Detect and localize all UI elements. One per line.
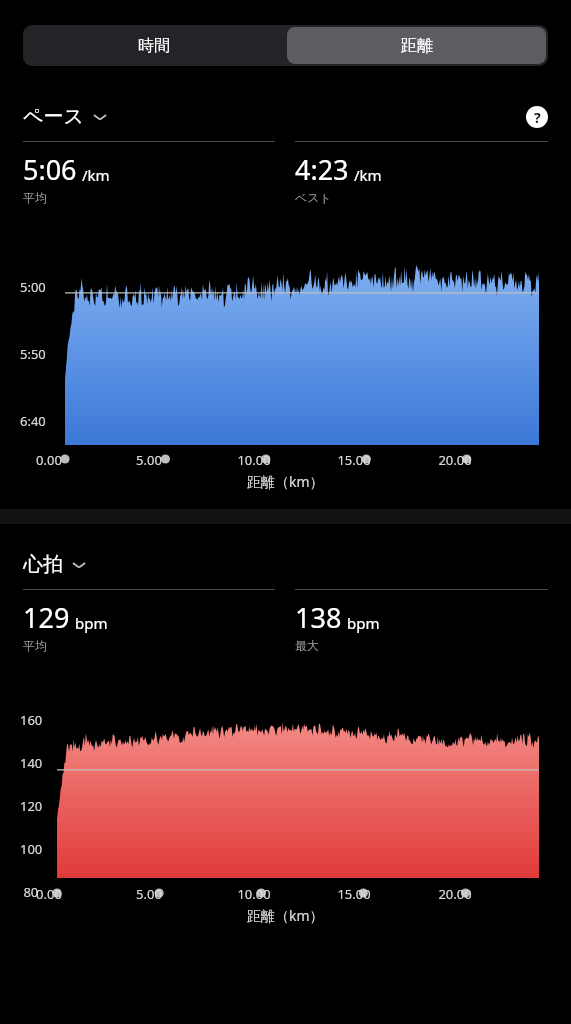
staticText: 5:06: [23, 151, 77, 188]
staticText: 距離（km）: [247, 472, 324, 491]
button[interactable]: Help: [526, 106, 548, 128]
staticText: 6:40: [20, 412, 46, 430]
staticText: 5:00: [20, 278, 46, 296]
staticText: /km: [82, 165, 110, 185]
staticText: 15.00: [337, 885, 371, 903]
staticText: /km: [354, 165, 382, 185]
staticText: 最大: [295, 638, 319, 653]
staticText: 20.00: [438, 885, 472, 903]
staticText: 10.00: [237, 885, 271, 903]
staticText: 心拍: [23, 552, 63, 577]
staticText: 距離: [401, 36, 433, 56]
staticText: 5:50: [20, 345, 46, 363]
staticText: ベスト: [295, 190, 332, 205]
staticText: bpm: [75, 613, 108, 633]
staticText: 0.00: [36, 451, 62, 469]
staticText: 平均: [23, 638, 47, 653]
staticText: 80: [20, 883, 39, 901]
staticText: 5.00: [136, 885, 162, 903]
button[interactable]: 距離: [287, 27, 546, 64]
staticText: ?: [534, 108, 541, 127]
staticText: 120: [20, 797, 43, 815]
staticText: 138: [295, 599, 342, 636]
staticText: 129: [23, 599, 70, 636]
staticText: 20.00: [438, 451, 472, 469]
staticText: ペース: [23, 104, 84, 129]
staticText: 0.00: [36, 885, 62, 903]
staticText: 距離（km）: [247, 906, 324, 925]
staticText: 160: [20, 711, 43, 729]
staticText: 15.00: [337, 451, 371, 469]
button[interactable]: 時間: [23, 25, 285, 66]
staticText: 100: [20, 840, 43, 858]
staticText: 5.00: [136, 451, 162, 469]
button[interactable]: ペース: [23, 102, 108, 131]
staticText: bpm: [347, 613, 380, 633]
staticText: 10.00: [237, 451, 271, 469]
staticText: 140: [20, 754, 43, 772]
staticText: 時間: [138, 36, 170, 56]
staticText: 4:23: [295, 151, 349, 188]
button[interactable]: 心拍: [23, 550, 87, 579]
staticText: 平均: [23, 190, 47, 205]
